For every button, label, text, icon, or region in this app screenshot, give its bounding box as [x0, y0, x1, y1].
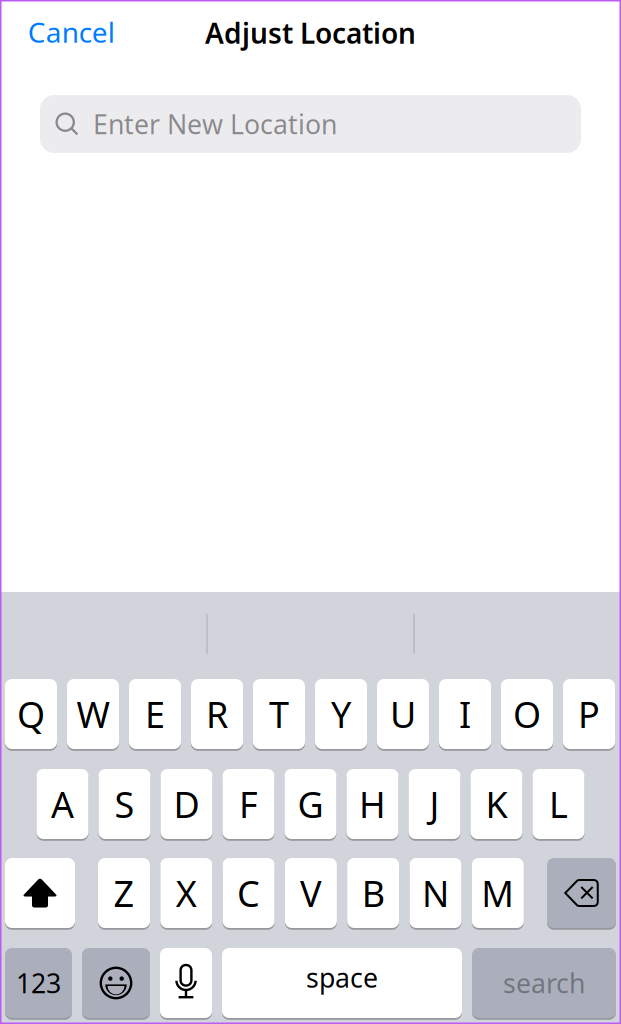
button[interactable]: Enter New Location: [40, 95, 581, 153]
button[interactable]: Shift: [5, 858, 75, 928]
staticText: P: [578, 690, 600, 738]
staticText: D: [173, 780, 199, 828]
staticText: H: [359, 780, 386, 828]
staticText: G: [297, 780, 323, 828]
staticText: I: [459, 690, 471, 738]
staticText: Enter New Location: [93, 106, 337, 142]
staticText: U: [390, 690, 416, 738]
staticText: 123: [16, 965, 61, 1001]
staticText: O: [513, 690, 541, 738]
button[interactable]: T: [253, 679, 305, 749]
button[interactable]: H: [346, 769, 398, 839]
button[interactable]: J: [408, 769, 460, 839]
button[interactable]: V: [285, 858, 337, 928]
staticText: X: [176, 869, 197, 917]
staticText: Adjust Location: [205, 14, 416, 52]
staticText: S: [114, 780, 134, 828]
button[interactable]: R: [191, 679, 243, 749]
button[interactable]: N: [409, 858, 461, 928]
button[interactable]: Y: [315, 679, 367, 749]
staticText: J: [429, 780, 439, 828]
button[interactable]: Emoji: [82, 948, 150, 1018]
staticText: space: [306, 960, 378, 995]
staticText: Cancel: [28, 13, 115, 51]
staticText: A: [51, 780, 74, 828]
button[interactable]: S: [98, 769, 150, 839]
button[interactable]: F: [222, 769, 274, 839]
button[interactable]: W: [67, 679, 119, 749]
button[interactable]: I: [439, 679, 491, 749]
button[interactable]: B: [347, 858, 399, 928]
button[interactable]: 123: [5, 948, 72, 1018]
button[interactable]: E: [129, 679, 181, 749]
button[interactable]: Q: [5, 679, 57, 749]
staticText: Y: [331, 690, 351, 738]
button[interactable]: Cancel: [20, 5, 123, 59]
button[interactable]: search: [472, 948, 616, 1018]
staticText: E: [145, 690, 165, 738]
staticText: K: [485, 780, 507, 828]
button[interactable]: A: [36, 769, 88, 839]
button[interactable]: O: [501, 679, 553, 749]
staticText: Z: [113, 869, 134, 917]
staticText: V: [300, 869, 322, 917]
button[interactable]: space: [222, 948, 462, 1018]
button[interactable]: Z: [98, 858, 150, 928]
staticText: T: [269, 690, 289, 738]
button[interactable]: P: [563, 679, 615, 749]
staticText: R: [206, 690, 228, 738]
staticText: M: [481, 869, 514, 917]
button[interactable]: K: [470, 769, 522, 839]
button[interactable]: L: [532, 769, 584, 839]
staticText: N: [422, 869, 449, 917]
button[interactable]: D: [160, 769, 212, 839]
staticText: W: [76, 690, 109, 738]
button[interactable]: Delete: [547, 858, 616, 928]
button[interactable]: M: [472, 858, 524, 928]
staticText: B: [362, 869, 385, 917]
button[interactable]: Dictation: [160, 948, 212, 1018]
button[interactable]: G: [284, 769, 336, 839]
staticText: L: [549, 780, 568, 828]
staticText: C: [237, 869, 260, 917]
button[interactable]: U: [377, 679, 429, 749]
button[interactable]: X: [160, 858, 212, 928]
staticText: F: [239, 780, 258, 828]
staticText: Q: [17, 690, 45, 738]
button[interactable]: C: [223, 858, 275, 928]
staticText: search: [503, 965, 585, 1001]
